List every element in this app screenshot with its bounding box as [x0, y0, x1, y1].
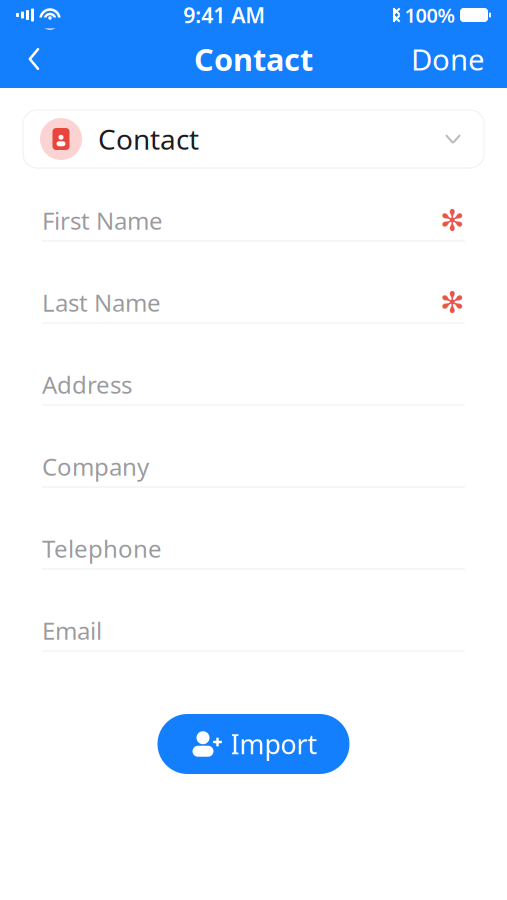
staticText: Company [42, 451, 149, 482]
staticText: First Name [42, 205, 163, 236]
staticText: Last Name [42, 287, 161, 318]
staticText: ✻ [440, 204, 465, 237]
staticText: 100% [404, 2, 455, 28]
button[interactable]: Contact [23, 110, 484, 168]
staticText: Import [230, 726, 317, 762]
staticText: 9:41 AM [183, 1, 265, 29]
staticText: ✻ [440, 286, 465, 319]
staticText: Contact [98, 120, 199, 158]
staticText: Contact [194, 39, 313, 79]
staticText: Done [411, 39, 485, 78]
staticText: Address [42, 369, 132, 400]
staticText: Telephone [42, 533, 162, 564]
button[interactable]: Import [157, 714, 349, 774]
staticText: Email [42, 615, 102, 646]
button[interactable]: Back [12, 37, 56, 81]
button[interactable]: Done [401, 37, 495, 81]
